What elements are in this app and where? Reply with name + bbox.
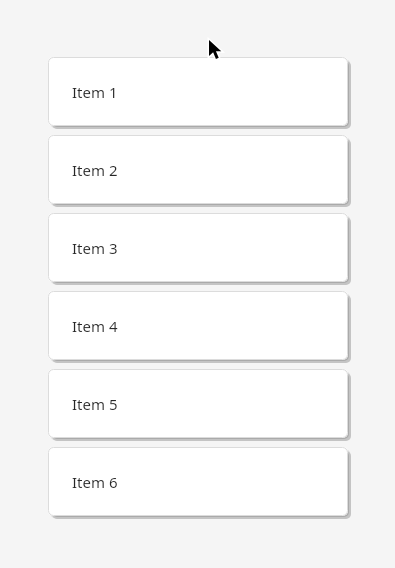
button[interactable]: Item 4 (48, 291, 352, 364)
button[interactable]: Item 1 (48, 57, 352, 130)
staticText: Item 5 (72, 394, 118, 414)
staticText: Item 6 (72, 472, 118, 492)
staticText: Item 2 (72, 160, 118, 180)
button[interactable]: Item 6 (48, 447, 352, 520)
staticText: Item 4 (72, 316, 118, 336)
button[interactable]: Item 3 (48, 213, 352, 286)
button[interactable]: Item 5 (48, 369, 352, 442)
staticText: Item 1 (72, 82, 118, 102)
staticText: Item 3 (72, 238, 118, 258)
button[interactable]: Item 2 (48, 135, 352, 208)
